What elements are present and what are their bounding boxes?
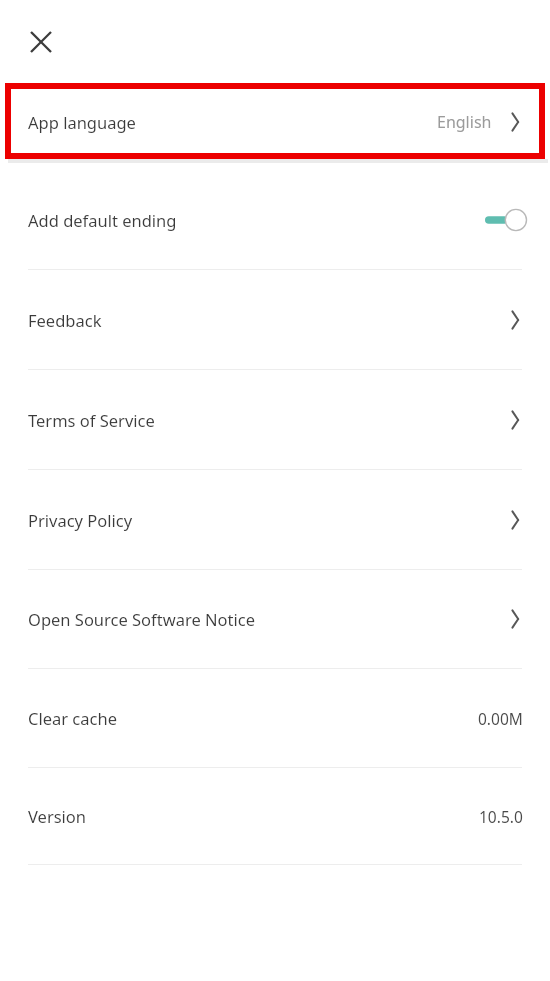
staticText: 0.00M: [478, 708, 523, 729]
button[interactable]: Open Source Software Notice: [0, 570, 550, 668]
staticText: English: [437, 111, 492, 133]
staticText: Add default ending: [28, 209, 177, 231]
staticText: Terms of Service: [28, 409, 155, 431]
other: Add default ending toggle: [484, 207, 528, 233]
staticText: Privacy Policy: [28, 509, 133, 531]
button[interactable]: Close: [21, 22, 61, 62]
staticText: Clear cache: [28, 707, 117, 729]
button[interactable]: Clear cache: [0, 669, 550, 767]
staticText: App language: [28, 111, 136, 133]
staticText: Open Source Software Notice: [28, 608, 256, 630]
button[interactable]: Privacy Policy: [0, 470, 550, 569]
button[interactable]: Add default ending: [0, 170, 550, 269]
staticText: Feedback: [28, 309, 102, 331]
button[interactable]: App language: [0, 83, 550, 161]
button[interactable]: Feedback: [0, 270, 550, 369]
staticText: Version: [28, 805, 87, 827]
button[interactable]: Version: [0, 768, 550, 864]
button[interactable]: Terms of Service: [0, 370, 550, 469]
staticText: 10.5.0: [479, 806, 523, 827]
